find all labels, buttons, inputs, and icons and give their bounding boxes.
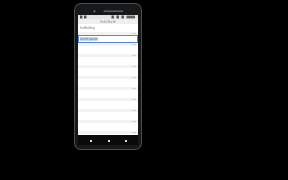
staticText: Hello World!: [100, 20, 116, 24]
button[interactable]: Recents: [121, 136, 130, 145]
button[interactable]: Back: [86, 136, 95, 145]
staticText: Scaffolding: [80, 26, 95, 30]
button[interactable]: Lorem ipsum: [78, 35, 138, 43]
staticText: 0/20: [132, 54, 136, 57]
button[interactable]: Home: [104, 136, 113, 145]
button[interactable]: Scaffolding: [78, 24, 138, 32]
staticText: Lorem ipsum: [80, 37, 98, 41]
staticText: 0/20: [132, 98, 136, 101]
staticText: 0/20: [132, 131, 136, 134]
staticText: 0/20: [132, 32, 136, 35]
staticText: 0/20: [132, 65, 136, 68]
staticText: 0/20: [132, 76, 136, 79]
staticText: 0/20: [132, 120, 136, 123]
staticText: 0/20: [132, 87, 136, 90]
staticText: 0/20: [132, 109, 136, 112]
staticText: 0/20: [132, 43, 136, 46]
